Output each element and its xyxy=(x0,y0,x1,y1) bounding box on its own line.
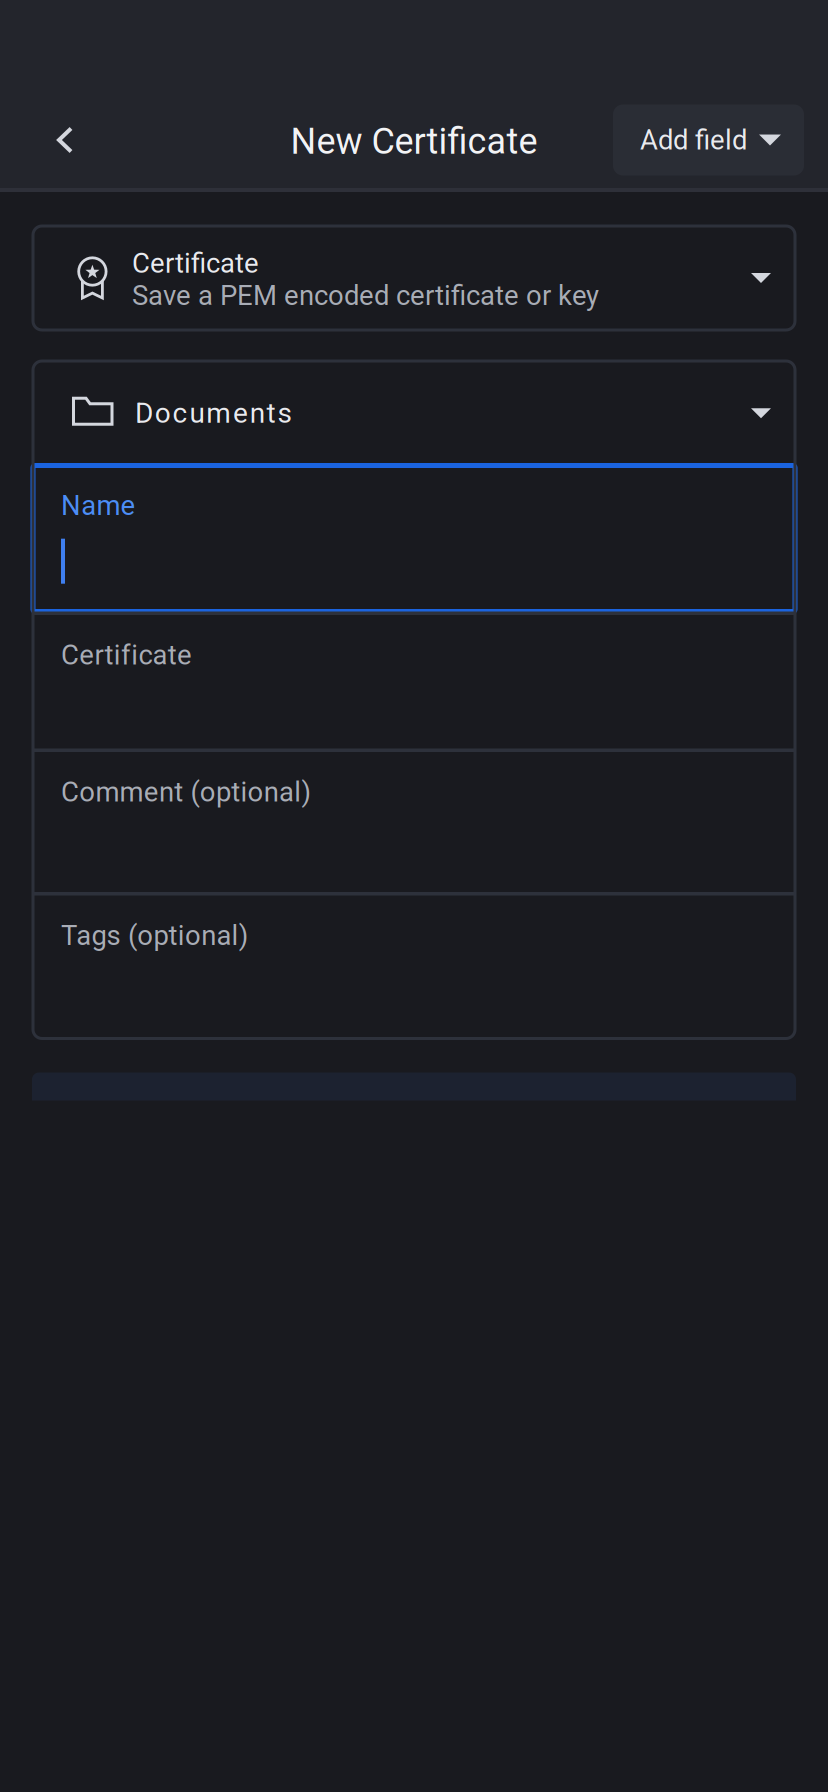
button[interactable]: Comment (optional) xyxy=(33,752,795,892)
staticText: Comment (optional) xyxy=(61,776,311,808)
button[interactable]: Back xyxy=(29,104,101,176)
staticText: Add field xyxy=(640,124,747,156)
staticText: Certificate xyxy=(132,247,259,279)
button[interactable]: Certificate xyxy=(33,226,795,330)
staticText: Certificate xyxy=(61,639,192,671)
button[interactable]: Certificate xyxy=(33,615,795,748)
staticText: New Certificate xyxy=(290,120,537,163)
button[interactable]: Add field xyxy=(613,104,804,175)
button[interactable]: Save xyxy=(32,1072,796,1128)
button[interactable]: Documents xyxy=(33,361,795,465)
staticText: Name xyxy=(61,489,136,522)
button[interactable]: Name xyxy=(33,465,795,611)
staticText: Tags (optional) xyxy=(61,919,249,952)
staticText: Save a PEM encoded certificate or key xyxy=(132,279,599,312)
button[interactable]: Tags (optional) xyxy=(33,895,795,1038)
staticText: Documents xyxy=(135,397,291,430)
